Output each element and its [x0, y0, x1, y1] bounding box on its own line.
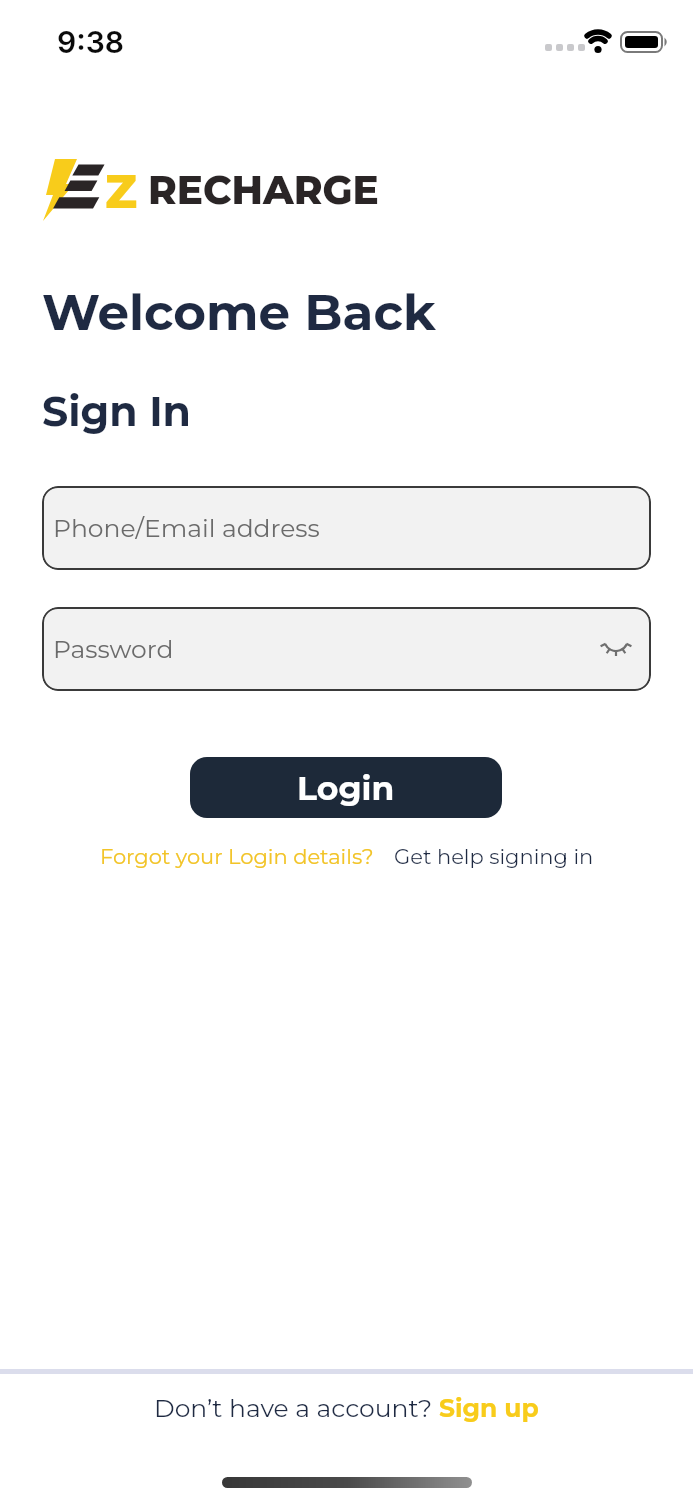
staticText: Sign In: [42, 386, 191, 436]
staticText: Phone/Email address: [53, 513, 320, 543]
staticText: Sign up: [439, 1393, 539, 1423]
staticText: Password: [53, 634, 174, 664]
staticText: RECHARGE: [148, 166, 379, 214]
staticText: 9:38: [57, 24, 125, 60]
staticText: Welcome Back: [42, 282, 436, 343]
staticText: Get help signing in: [394, 844, 594, 870]
staticText: Don’t have a account?: [154, 1393, 439, 1423]
staticText: Z: [105, 163, 137, 220]
staticText: Forgot your Login details?: [100, 844, 374, 870]
staticText: Login: [297, 768, 395, 808]
